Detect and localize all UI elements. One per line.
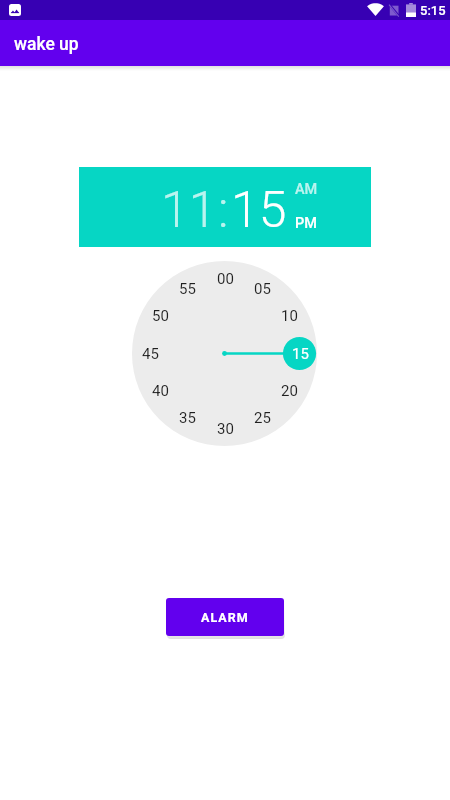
staticText: PM [295,215,317,232]
button[interactable]: 10 [273,305,305,327]
button[interactable]: AM [293,176,321,202]
button[interactable]: 15 [284,343,316,365]
button[interactable]: 25 [246,407,278,429]
staticText: 15 [231,181,287,240]
button[interactable]: ALARM [166,598,284,636]
staticText: AM [295,181,318,198]
button[interactable]: 50 [144,305,176,327]
button[interactable]: 30 [209,418,241,440]
staticText: 05 [254,280,271,298]
staticText: 15 [292,345,309,363]
button[interactable]: 05 [246,278,278,300]
staticText: ALARM [201,610,249,625]
staticText: 10 [281,307,298,325]
button[interactable]: 20 [273,380,305,402]
staticText: 35 [179,409,196,427]
staticText: 25 [254,409,271,427]
staticText: 5:15 [420,3,446,18]
staticText: 11 [161,181,217,240]
button[interactable]: 11 [161,172,219,242]
staticText: 40 [152,382,169,400]
button[interactable]: 00 [209,268,241,290]
staticText: wake up [14,34,79,55]
button[interactable]: 55 [171,278,203,300]
button[interactable]: 15 [231,172,291,242]
staticText: 45 [142,345,159,363]
staticText: 50 [152,307,169,325]
staticText: 00 [217,270,234,288]
button[interactable]: 45 [134,343,166,365]
staticText: 30 [217,420,234,438]
staticText: 55 [179,280,196,298]
staticText: : [218,181,229,240]
button[interactable]: 35 [171,407,203,429]
button[interactable]: PM [293,210,321,236]
button[interactable]: 40 [144,380,176,402]
staticText: 20 [281,382,298,400]
